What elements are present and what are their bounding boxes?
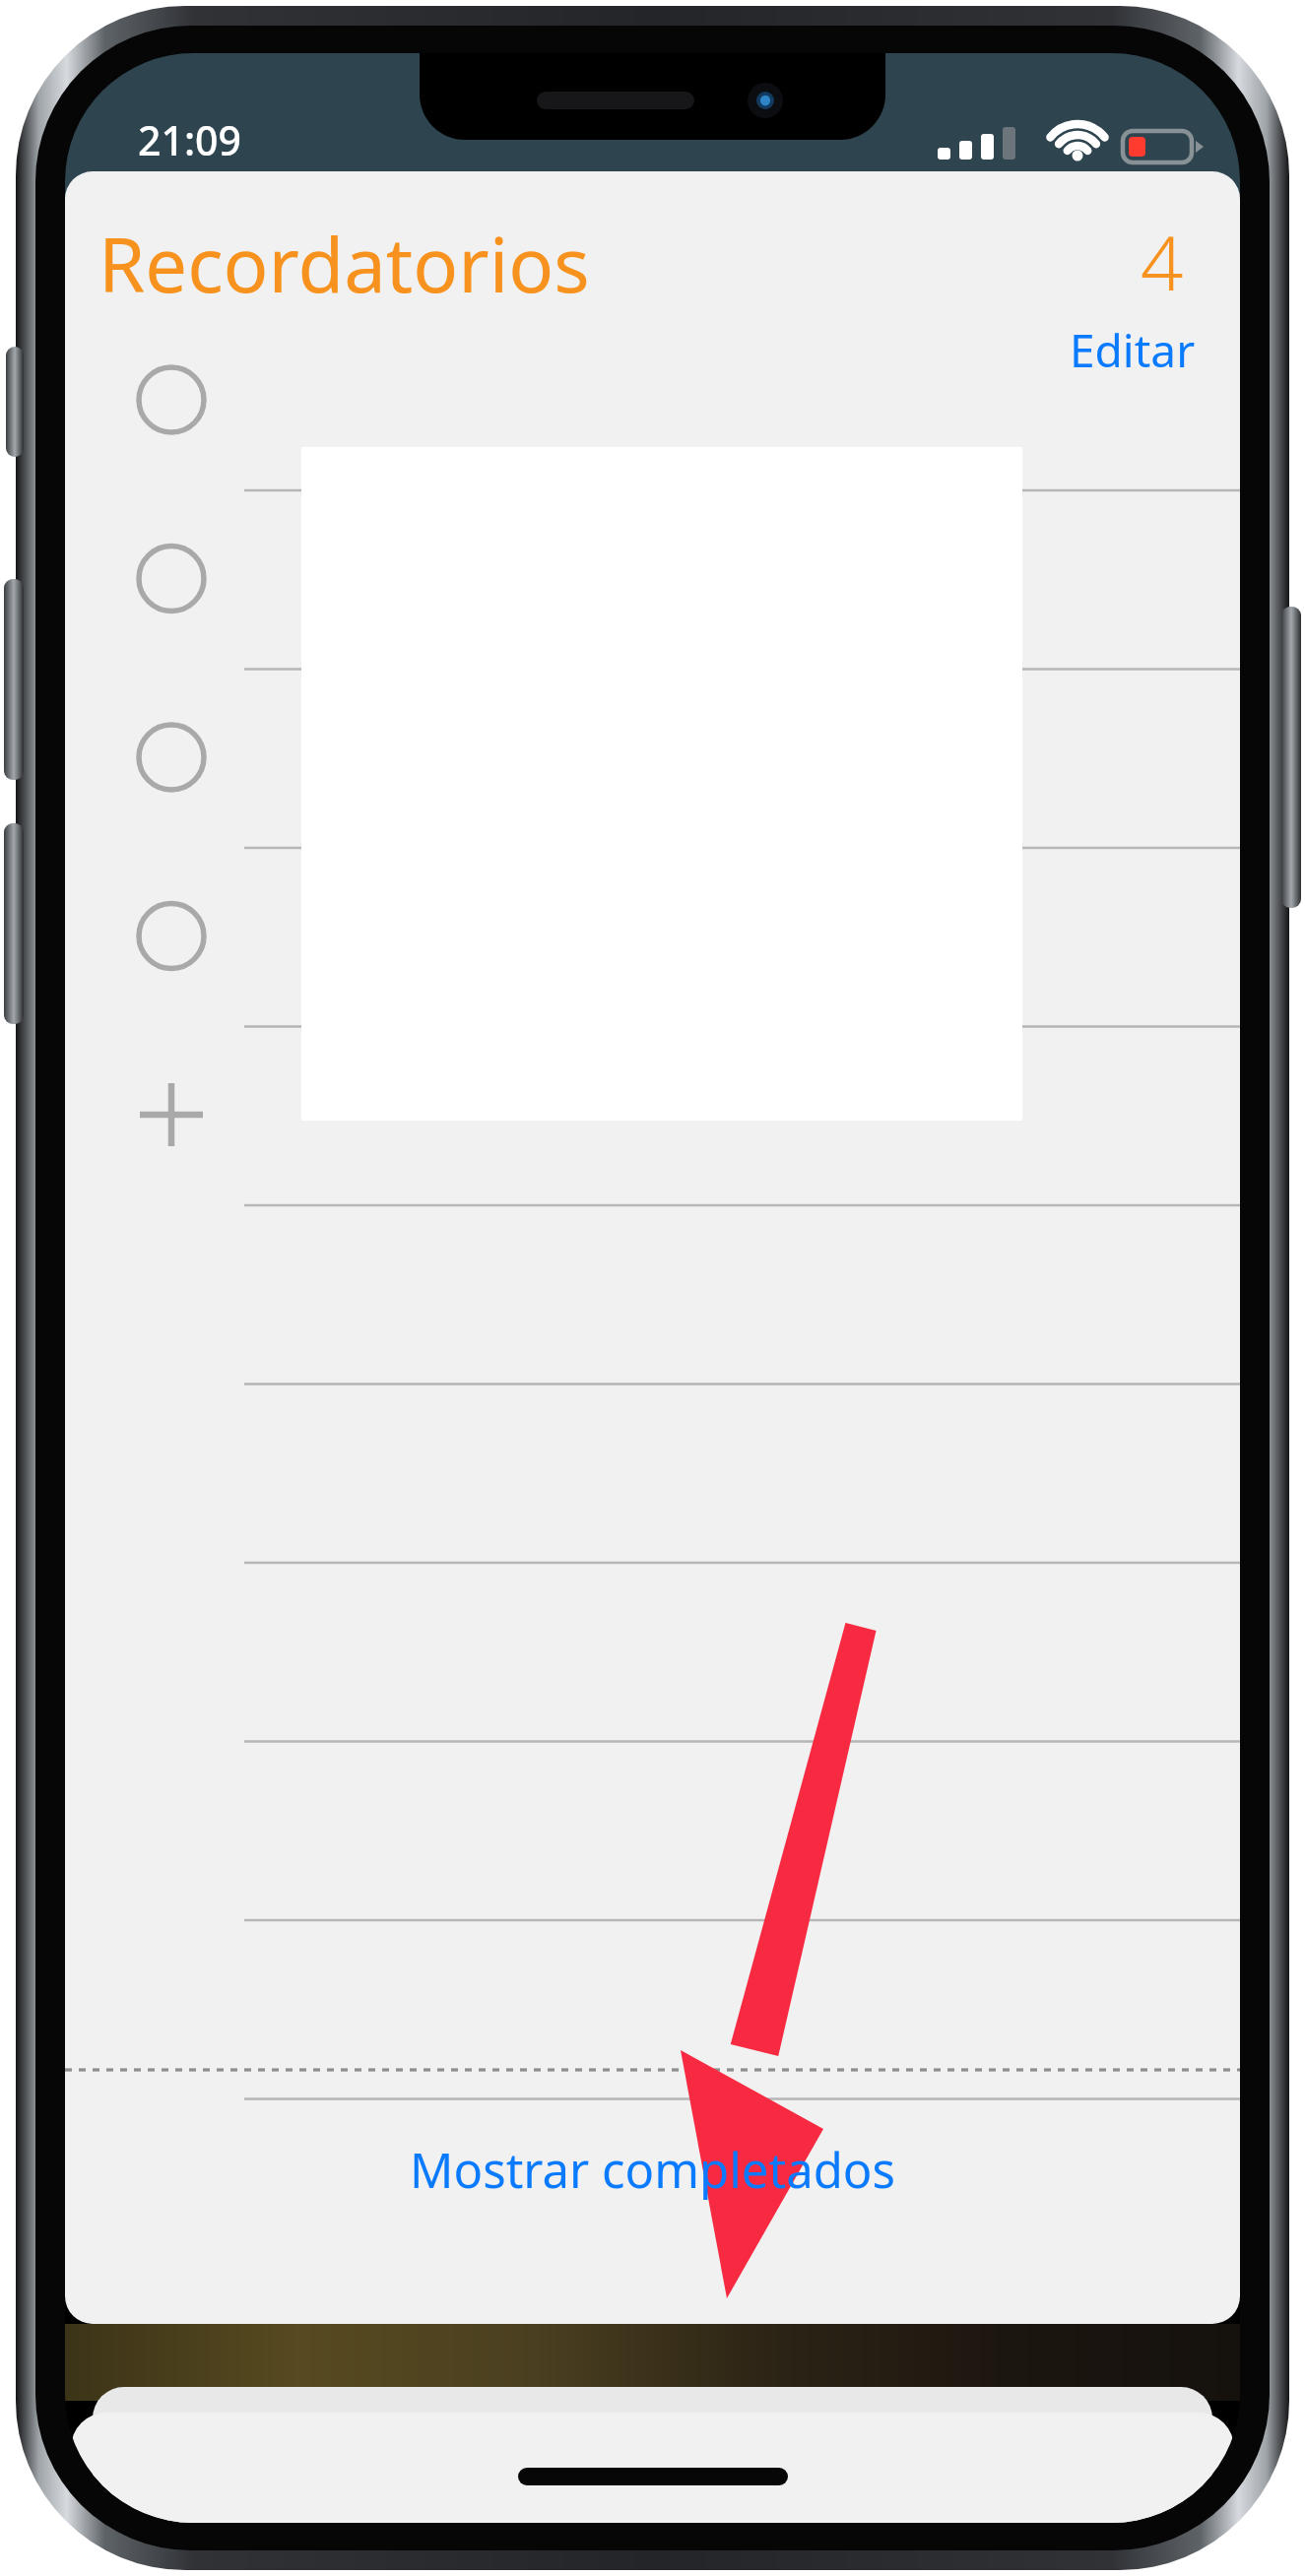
other: Signal, Wi-Fi and battery status — [930, 122, 1178, 173]
button[interactable]: Recordatorios — [98, 213, 590, 315]
staticText: 4 — [1141, 211, 1184, 313]
staticText: 21:09 — [138, 112, 241, 167]
staticText: Mostrar completados — [410, 2137, 895, 2203]
button[interactable]: Editar — [1058, 311, 1207, 389]
staticText: Editar — [1070, 319, 1196, 381]
button[interactable]: Mostrar completados — [65, 2119, 1240, 2249]
